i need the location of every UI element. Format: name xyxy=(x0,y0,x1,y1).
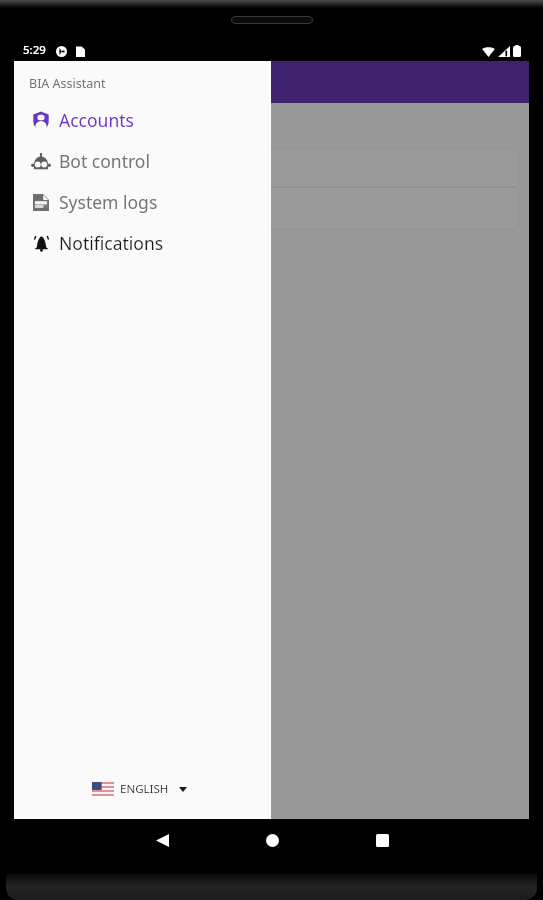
button[interactable]: Back xyxy=(147,825,177,855)
button[interactable]: Home xyxy=(257,825,287,855)
staticText: Notifications xyxy=(59,231,164,255)
staticText: 5:29 xyxy=(23,42,46,58)
button[interactable]: ENGLISH xyxy=(14,769,269,809)
button[interactable]: Accounts xyxy=(14,99,269,140)
staticText: Accounts xyxy=(59,108,134,132)
button[interactable]: Notifications xyxy=(14,222,269,263)
staticText: BIA Assistant xyxy=(29,75,106,92)
button[interactable]: System logs xyxy=(14,181,269,222)
button[interactable]: Recent apps xyxy=(367,825,397,855)
button[interactable]: Bot control xyxy=(14,140,269,181)
staticText: System logs xyxy=(59,190,158,214)
staticText: ENGLISH xyxy=(120,781,169,797)
staticText: Bot control xyxy=(59,149,150,173)
